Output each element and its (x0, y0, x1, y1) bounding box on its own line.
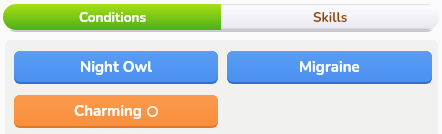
other: Toggle Charming (147, 106, 158, 117)
staticText: Migraine (299, 57, 360, 77)
staticText: Charming (74, 101, 142, 121)
button[interactable]: Conditions (3, 4, 221, 30)
staticText: Conditions (79, 8, 146, 26)
staticText: Skills (313, 8, 348, 26)
staticText: Night Owl (80, 57, 153, 77)
button[interactable]: Migraine (227, 51, 432, 84)
button[interactable]: Charming (14, 95, 218, 128)
button[interactable]: Night Owl (14, 51, 218, 84)
button[interactable]: Skills (221, 4, 439, 30)
